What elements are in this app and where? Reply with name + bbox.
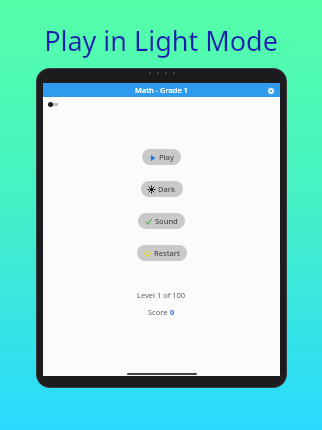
staticText: Play in Light Mode [0, 22, 322, 59]
button[interactable]: Dark [141, 181, 183, 197]
button[interactable]: Sound [138, 213, 185, 229]
button[interactable]: Play [142, 149, 181, 165]
staticText: Play [159, 152, 174, 162]
staticText: Math - Grade 1 [135, 85, 189, 95]
staticText: Level 1 of 100 [137, 290, 186, 300]
staticText: Dark [158, 184, 176, 194]
button[interactable]: Restart [137, 245, 187, 261]
staticText: Score [148, 307, 170, 317]
staticText: 0 [170, 307, 175, 317]
button[interactable]: Settings [265, 85, 276, 96]
staticText: Restart [154, 248, 180, 258]
staticText: Sound [155, 216, 178, 226]
